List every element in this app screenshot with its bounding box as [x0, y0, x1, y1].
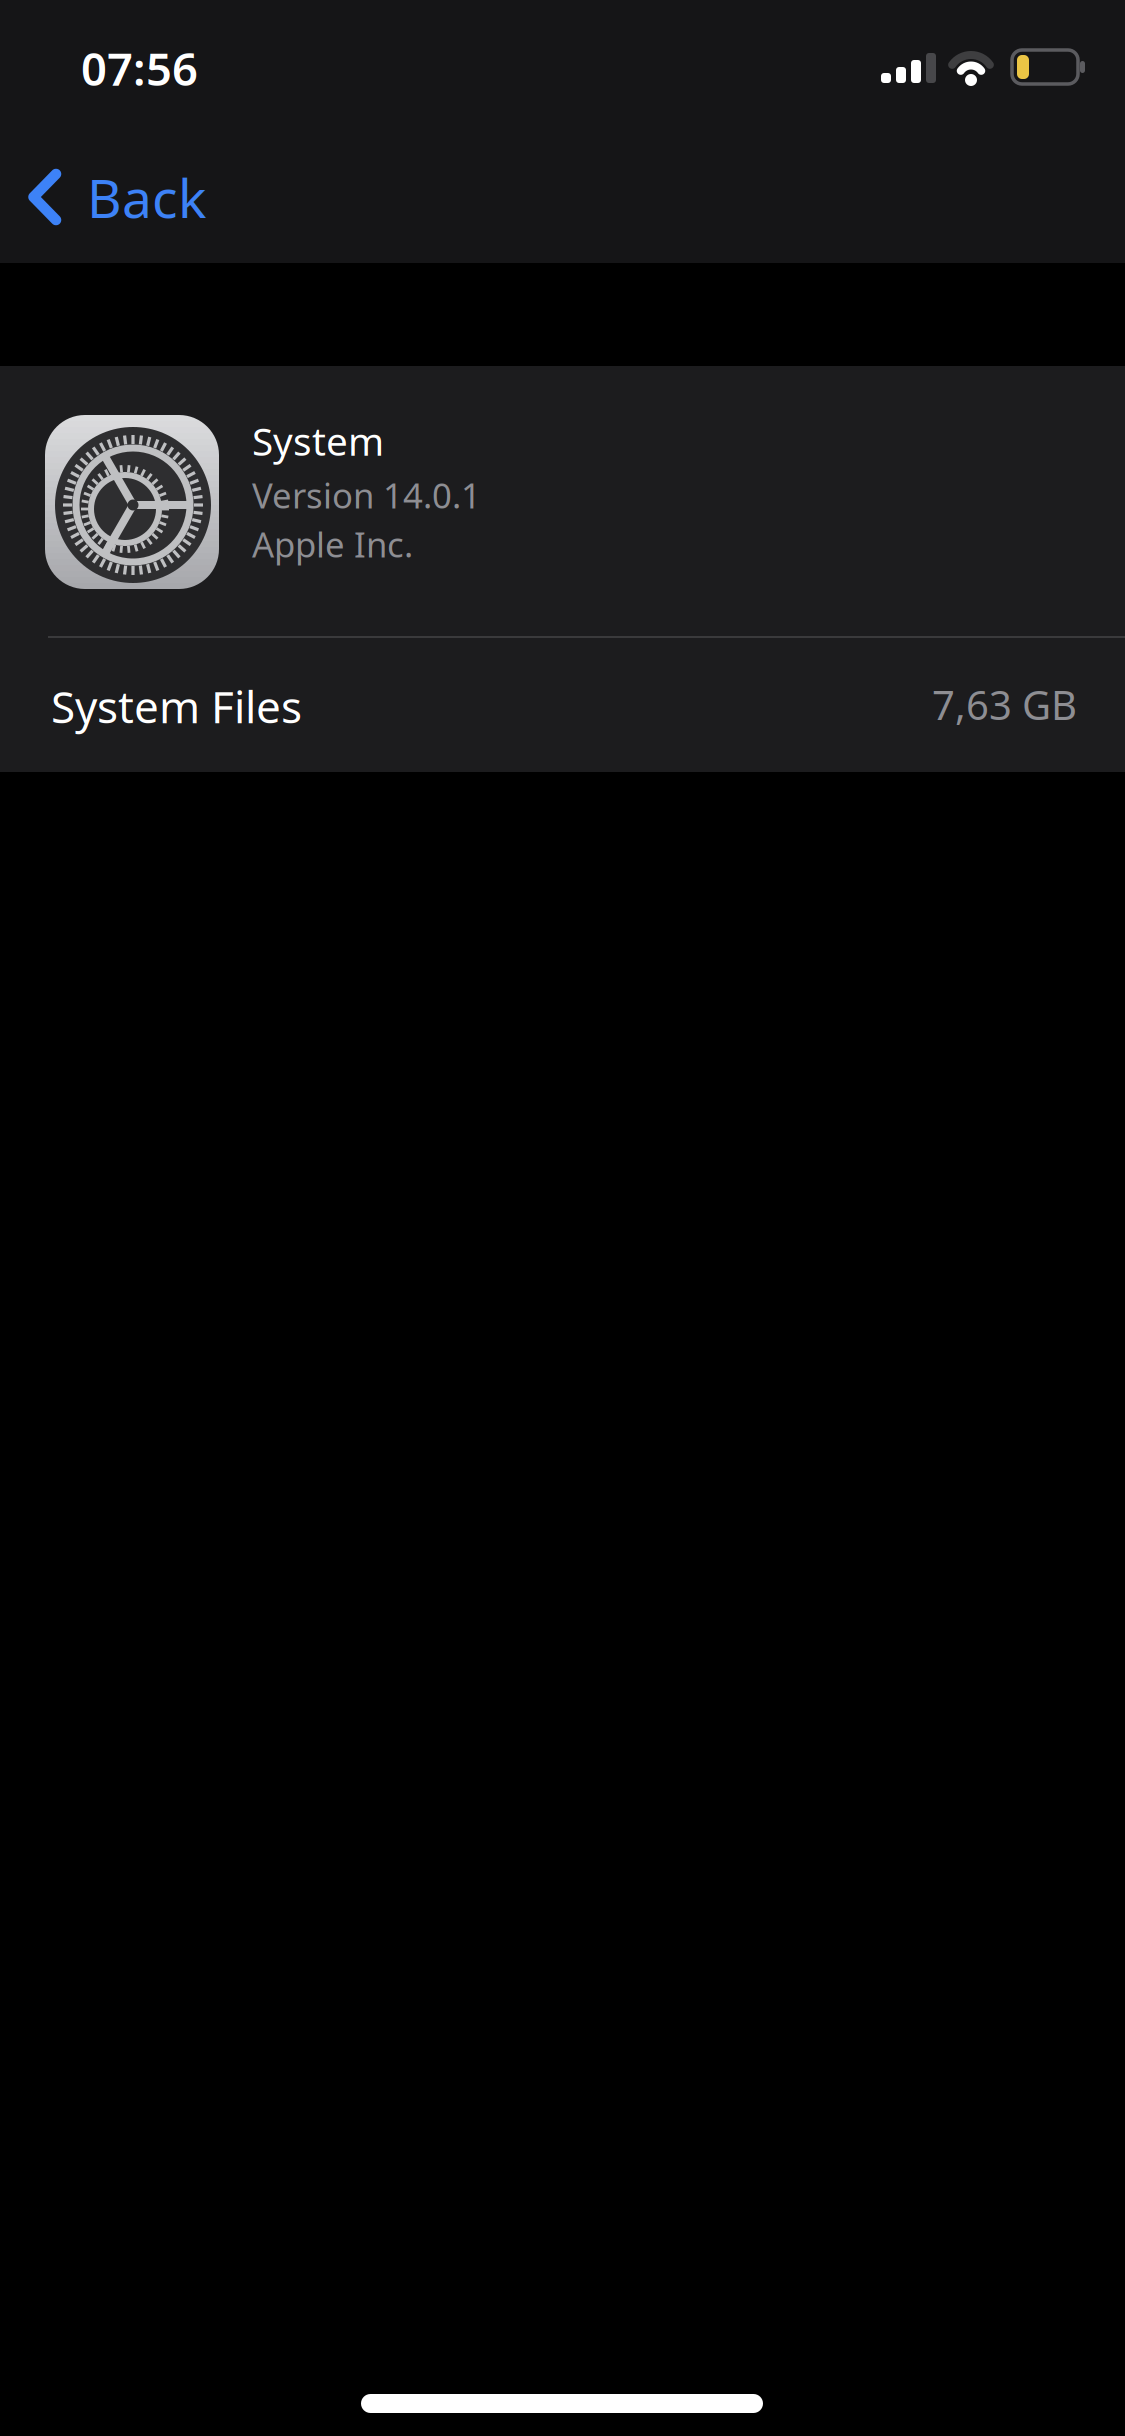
- staticText: 07:56: [81, 38, 198, 98]
- staticText: 7,63 GB: [932, 678, 1077, 731]
- staticText: Version 14.0.1: [252, 472, 481, 518]
- staticText: System: [252, 415, 384, 466]
- staticText: Apple Inc.: [252, 521, 413, 567]
- staticText: Back: [87, 162, 206, 233]
- staticText: System Files: [51, 677, 302, 735]
- button[interactable]: Back: [0, 146, 240, 250]
